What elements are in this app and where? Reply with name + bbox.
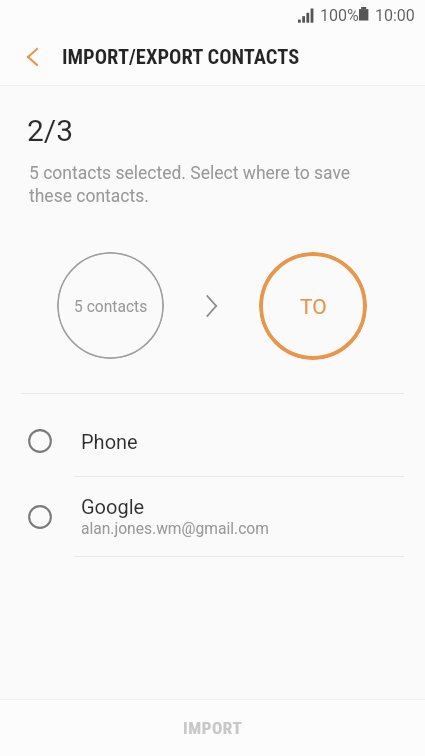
staticText: Phone: [81, 430, 138, 453]
staticText: IMPORT/EXPORT CONTACTS: [62, 45, 300, 69]
staticText: TO: [300, 295, 327, 320]
staticText: 100%: [320, 6, 359, 25]
staticText: Google: [81, 495, 145, 518]
button[interactable]: Phone: [0, 394, 425, 476]
button[interactable]: Google: [0, 477, 425, 556]
staticText: 10:00: [375, 6, 415, 25]
button[interactable]: Destination: [259, 252, 367, 360]
button[interactable]: IMPORT: [0, 700, 425, 756]
button[interactable]: Navigate up: [0, 31, 62, 85]
staticText: 5 contacts: [74, 298, 148, 316]
staticText: 2/3: [27, 113, 74, 148]
button[interactable]: 5 contacts selected: [57, 252, 164, 359]
staticText: IMPORT: [183, 718, 243, 738]
staticText: alan.jones.wm@gmail.com: [81, 520, 269, 538]
staticText: 5 contacts selected. Select where to sav…: [29, 163, 370, 206]
